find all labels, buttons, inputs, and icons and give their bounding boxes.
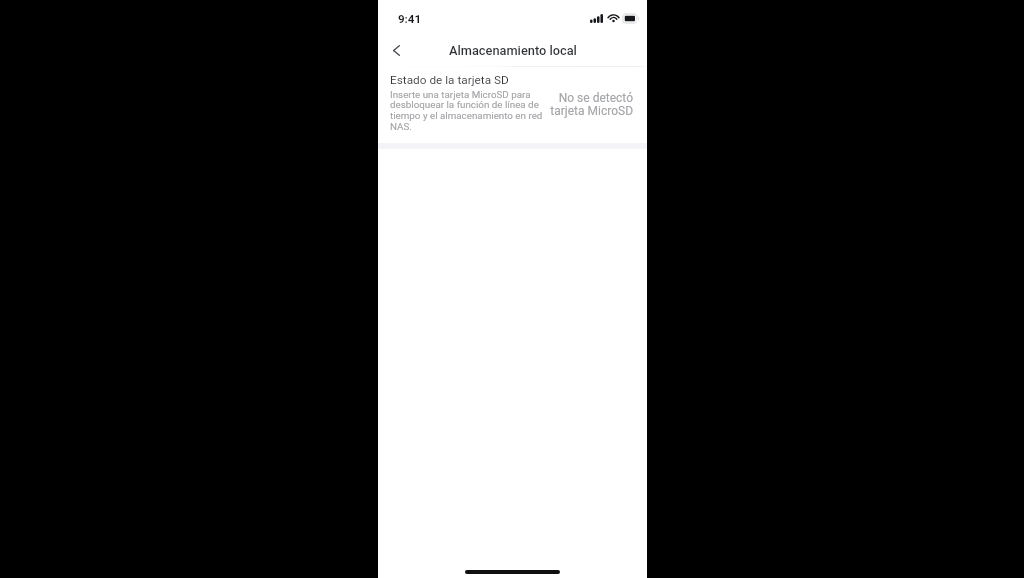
staticText: 9:41: [398, 12, 422, 25]
button[interactable]: Back: [382, 36, 410, 64]
button[interactable]: Estado de la tarjeta SD: [378, 67, 647, 143]
staticText: Estado de la tarjeta SD: [390, 73, 509, 87]
staticText: No se detectó tarjeta MicroSD: [547, 91, 633, 118]
staticText: Inserte una tarjeta MicroSD para desbloq…: [390, 89, 546, 133]
staticText: Almacenamiento local: [449, 43, 577, 58]
